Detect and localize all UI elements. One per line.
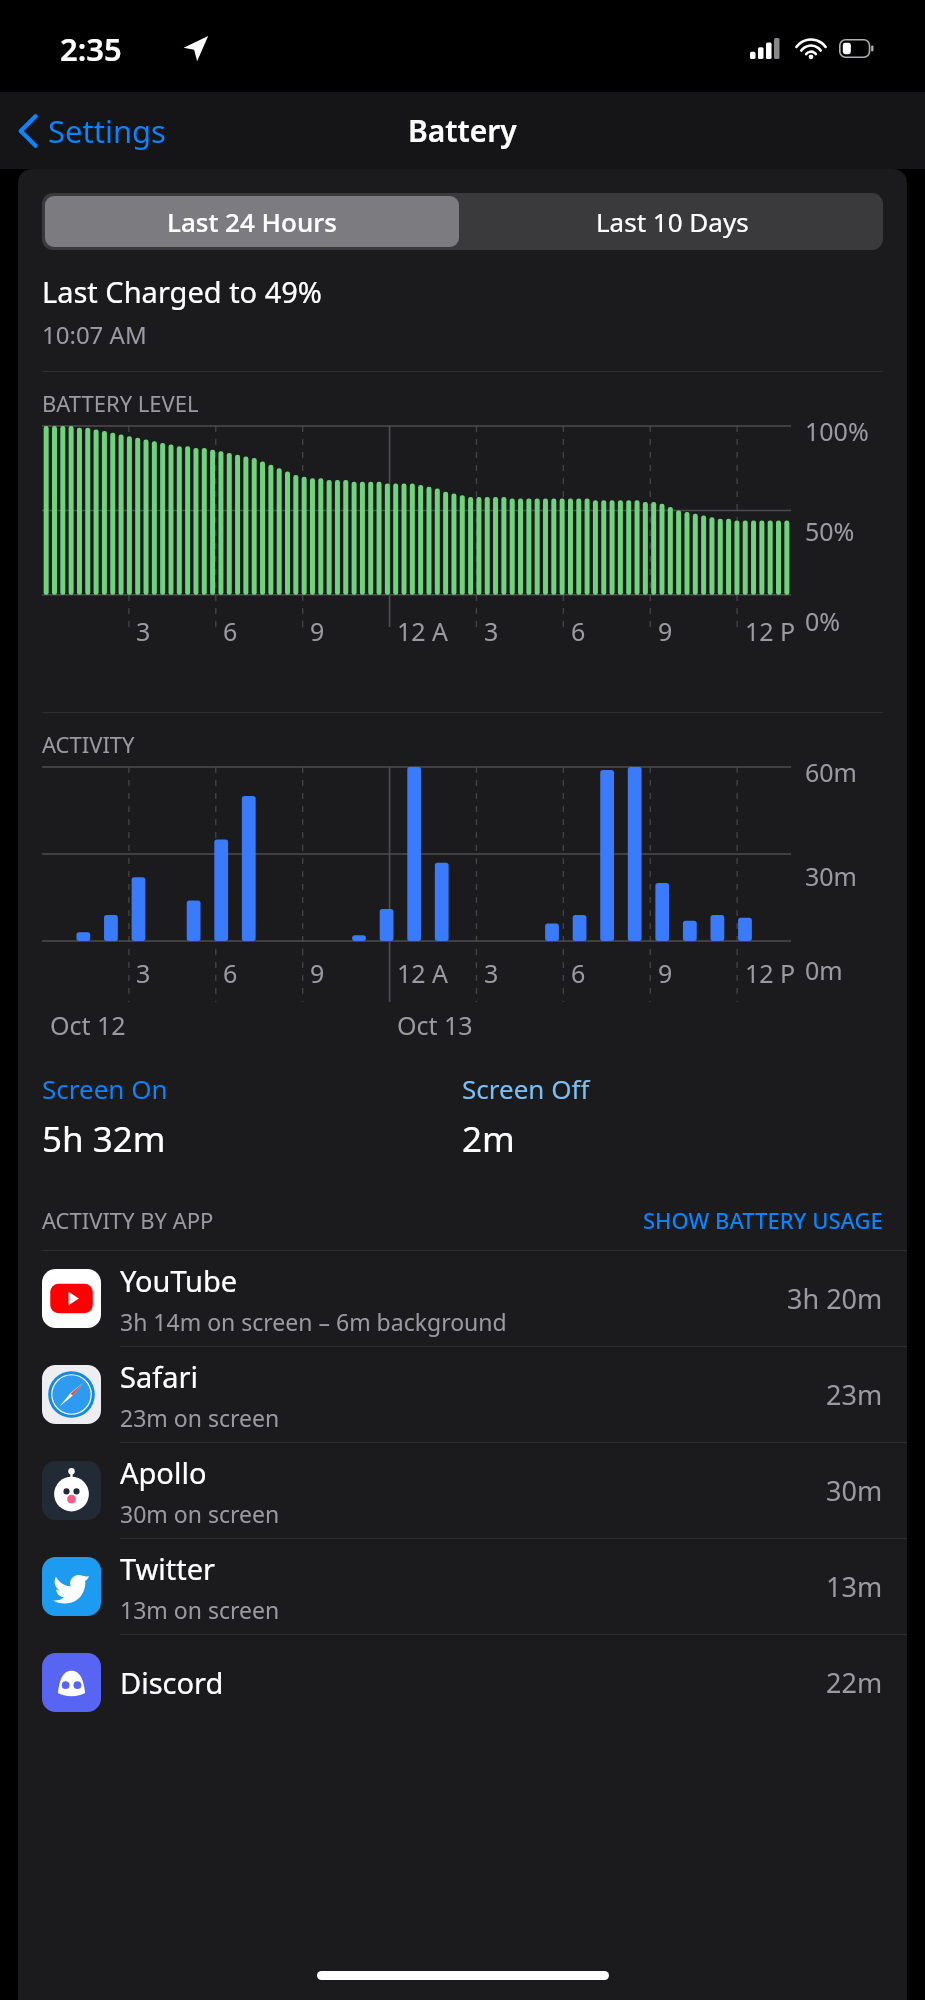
staticText: 50% [805, 514, 855, 548]
staticText: Safari [120, 1357, 198, 1396]
staticText: YouTube [120, 1261, 238, 1300]
button[interactable]: Discord [18, 1635, 907, 1730]
button[interactable]: SHOW BATTERY USAGE [643, 1205, 883, 1235]
staticText: Screen Off [462, 1071, 590, 1106]
staticText: 22m [826, 1664, 883, 1701]
staticText: Last 10 Days [596, 204, 749, 239]
staticText: 2:35 [60, 28, 122, 70]
staticText: 3 [136, 614, 151, 648]
button[interactable]: Last 24 Hours [45, 196, 459, 247]
staticText: 6 [571, 614, 586, 648]
staticText: Last 24 Hours [167, 204, 337, 239]
staticText: 30m on screen [120, 1498, 280, 1529]
staticText: 3h 14m on screen – 6m background [120, 1306, 507, 1337]
staticText: 0m [805, 953, 843, 987]
staticText: 30m [826, 1472, 883, 1509]
staticText: 30m [805, 859, 857, 893]
staticText: SHOW BATTERY USAGE [643, 1205, 883, 1235]
staticText: Last Charged to 49% [42, 272, 322, 311]
staticText: Oct 12 [50, 1008, 126, 1042]
staticText: 3h 20m [787, 1280, 883, 1317]
staticText: Apollo [120, 1453, 207, 1492]
button[interactable]: Apollo [18, 1443, 907, 1539]
staticText: 3 [484, 614, 499, 648]
button[interactable]: Safari [18, 1347, 907, 1443]
staticText: 9 [658, 956, 673, 990]
staticText: 0% [805, 604, 841, 638]
staticText: BATTERY LEVEL [42, 388, 199, 418]
staticText: 12 A [397, 614, 449, 648]
staticText: 12 P [745, 956, 796, 990]
staticText: 10:07 AM [42, 318, 147, 351]
button[interactable]: Last 10 Days [462, 193, 883, 250]
button[interactable]: Settings [10, 104, 174, 158]
button[interactable]: Screen On [42, 1071, 462, 1163]
staticText: 9 [310, 956, 325, 990]
staticText: 9 [310, 614, 325, 648]
staticText: 12 A [397, 956, 449, 990]
button[interactable]: YouTube [18, 1251, 907, 1347]
staticText: ACTIVITY [42, 729, 135, 759]
staticText: 6 [223, 614, 238, 648]
button[interactable]: Screen Off [462, 1071, 883, 1163]
staticText: 2m [462, 1115, 515, 1163]
staticText: 6 [571, 956, 586, 990]
staticText: 12 P [745, 614, 796, 648]
staticText: Discord [120, 1663, 224, 1702]
staticText: 3 [484, 956, 499, 990]
staticText: 23m [826, 1376, 883, 1413]
staticText: 13m [826, 1568, 883, 1605]
staticText: 5h 32m [42, 1115, 166, 1163]
staticText: 13m on screen [120, 1594, 280, 1625]
staticText: Screen On [42, 1071, 168, 1106]
staticText: Settings [48, 110, 166, 152]
staticText: 9 [658, 614, 673, 648]
staticText: Twitter [120, 1549, 216, 1588]
staticText: 3 [136, 956, 151, 990]
staticText: 6 [223, 956, 238, 990]
staticText: ACTIVITY BY APP [42, 1205, 214, 1235]
staticText: 60m [805, 755, 857, 789]
staticText: Oct 13 [397, 1008, 473, 1042]
button[interactable]: Twitter [18, 1539, 907, 1635]
staticText: 100% [805, 414, 869, 448]
staticText: Battery [408, 110, 517, 151]
staticText: 23m on screen [120, 1402, 280, 1433]
